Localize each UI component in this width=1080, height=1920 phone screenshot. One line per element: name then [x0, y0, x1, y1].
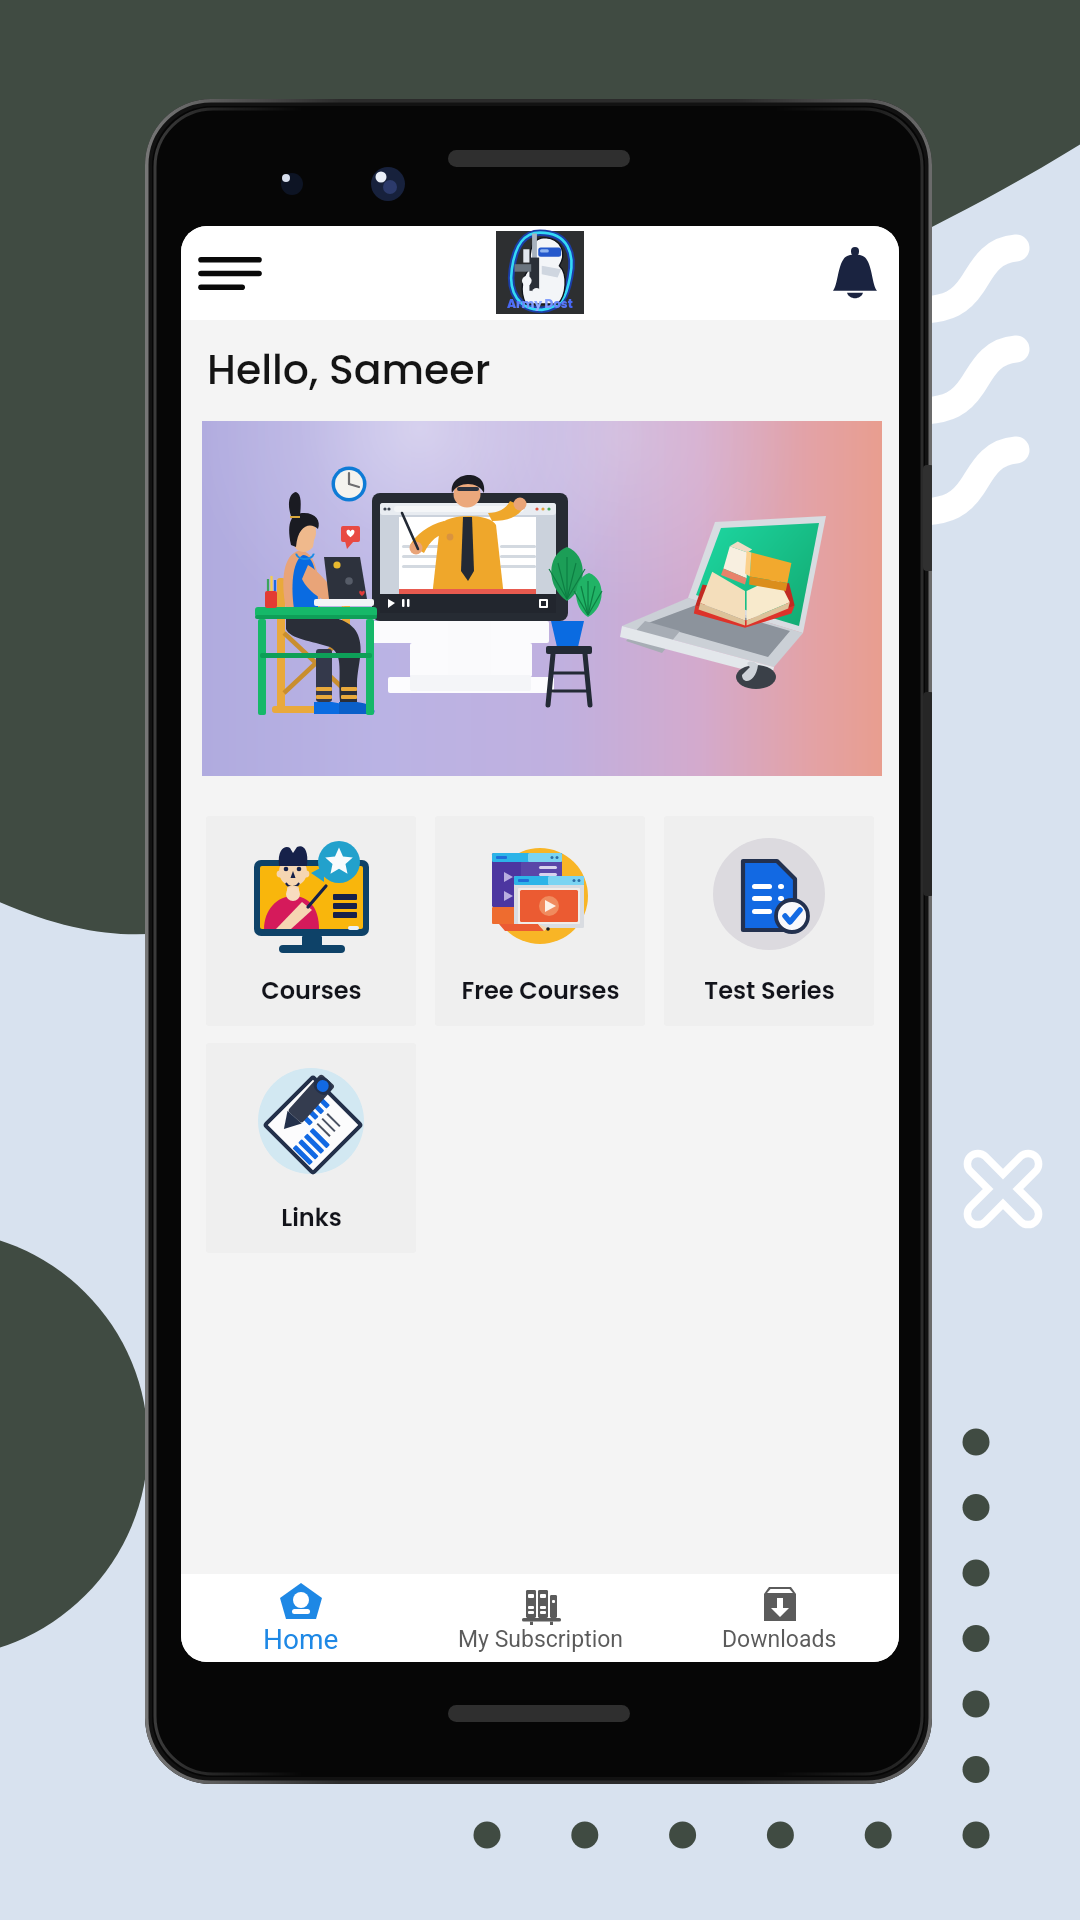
- button[interactable]: Notifications: [823, 241, 887, 305]
- staticText: My Subscription: [458, 1626, 624, 1653]
- staticText: Hello, Sameer: [207, 341, 491, 398]
- button[interactable]: Home: [181, 1574, 421, 1662]
- staticText: Links: [281, 1201, 342, 1235]
- button[interactable]: Courses: [206, 816, 416, 1026]
- staticText: Test Series: [704, 974, 835, 1008]
- button[interactable]: Test Series: [664, 816, 874, 1026]
- button[interactable]: Downloads: [660, 1574, 899, 1662]
- staticText: Free Courses: [461, 974, 620, 1008]
- button[interactable]: Links: [206, 1043, 416, 1253]
- button[interactable]: Menu: [188, 238, 272, 308]
- button[interactable]: Free Courses: [435, 816, 645, 1026]
- button[interactable]: [202, 421, 882, 776]
- staticText: Courses: [261, 974, 362, 1008]
- staticText: Home: [263, 1623, 339, 1656]
- staticText: Downloads: [722, 1626, 837, 1653]
- button[interactable]: My Subscription: [421, 1574, 660, 1662]
- staticText: Army Dost: [507, 295, 573, 312]
